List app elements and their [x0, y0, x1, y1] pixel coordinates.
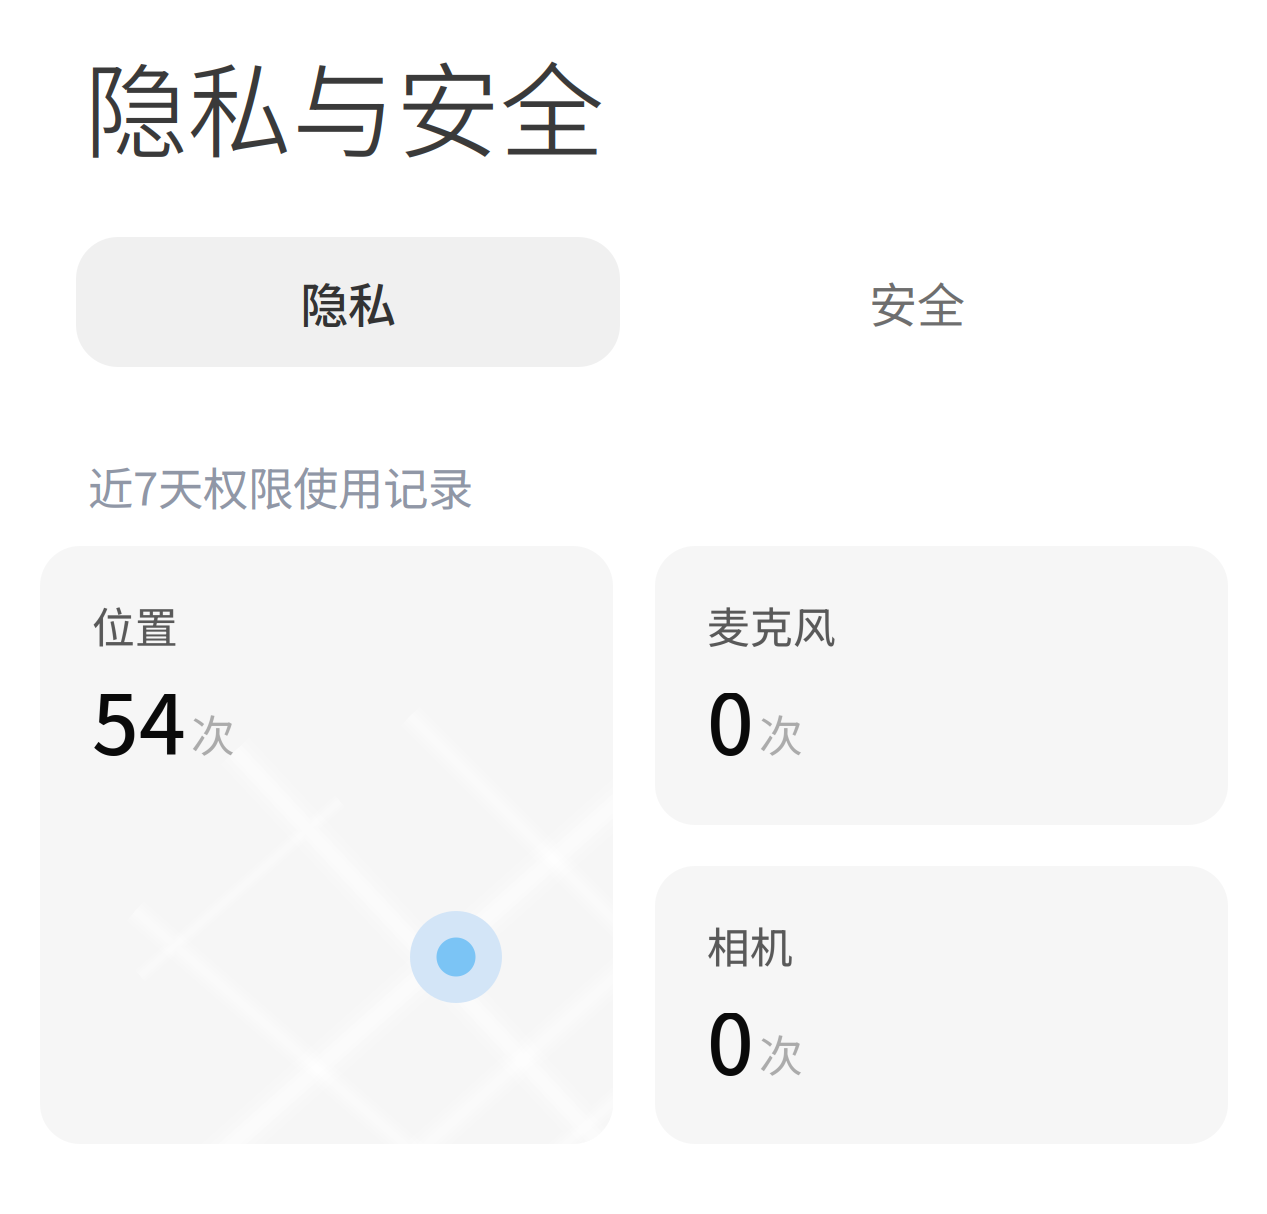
button[interactable]: 安全	[620, 237, 1214, 367]
button[interactable]: 隐私	[76, 237, 620, 367]
button[interactable]: 麦克风	[655, 546, 1228, 825]
staticText: 近7天权限使用记录	[88, 453, 473, 519]
staticText: 次	[759, 701, 803, 765]
staticText: 0	[707, 659, 754, 779]
staticText: 隐私	[300, 267, 396, 337]
staticText: 安全	[869, 267, 965, 337]
staticText: 隐私与安全	[84, 29, 604, 180]
button[interactable]: 相机	[655, 866, 1228, 1144]
staticText: 0	[707, 979, 754, 1099]
staticText: 次	[759, 1021, 803, 1085]
staticText: 54	[92, 659, 186, 779]
staticText: 麦克风	[707, 594, 836, 656]
staticText: 位置	[92, 594, 178, 656]
button[interactable]: 位置	[40, 546, 613, 1144]
staticText: 次	[191, 701, 235, 765]
staticText: 相机	[707, 914, 793, 976]
